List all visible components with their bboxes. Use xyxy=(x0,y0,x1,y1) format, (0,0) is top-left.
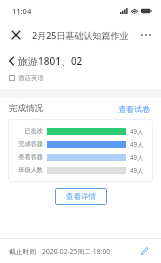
staticText: 49人 xyxy=(130,153,144,161)
staticText: 查看试卷 xyxy=(118,104,150,114)
staticText: 查看答题 xyxy=(18,153,43,161)
staticText: 49人 xyxy=(130,166,144,174)
staticText: 旅游1801、02 xyxy=(18,54,83,68)
button[interactable]: More options xyxy=(136,25,156,45)
button[interactable]: Close xyxy=(6,25,26,45)
staticText: 酒店英语 xyxy=(18,74,44,82)
staticText: 班级人数 xyxy=(18,166,43,174)
staticText: 49人 xyxy=(130,127,144,135)
button[interactable]: 查看试卷 xyxy=(116,102,152,116)
staticText: 已批改 xyxy=(24,127,43,135)
staticText: 完成情况 xyxy=(9,103,43,114)
staticText: 49人 xyxy=(130,140,144,148)
staticText: 2月25日基础认知篇作业 xyxy=(32,29,129,41)
button[interactable]: 旅游1801、02 xyxy=(9,54,83,68)
staticText: 2020-02-25周二 18:00 xyxy=(42,247,111,256)
staticText: 截止时间 xyxy=(9,247,37,256)
staticText: 查看详情 xyxy=(66,192,96,201)
button[interactable]: 查看详情 xyxy=(55,188,107,205)
button[interactable]: Edit deadline xyxy=(136,243,152,259)
staticText: 11:04 xyxy=(12,6,32,16)
staticText: 完成答题 xyxy=(18,140,43,148)
